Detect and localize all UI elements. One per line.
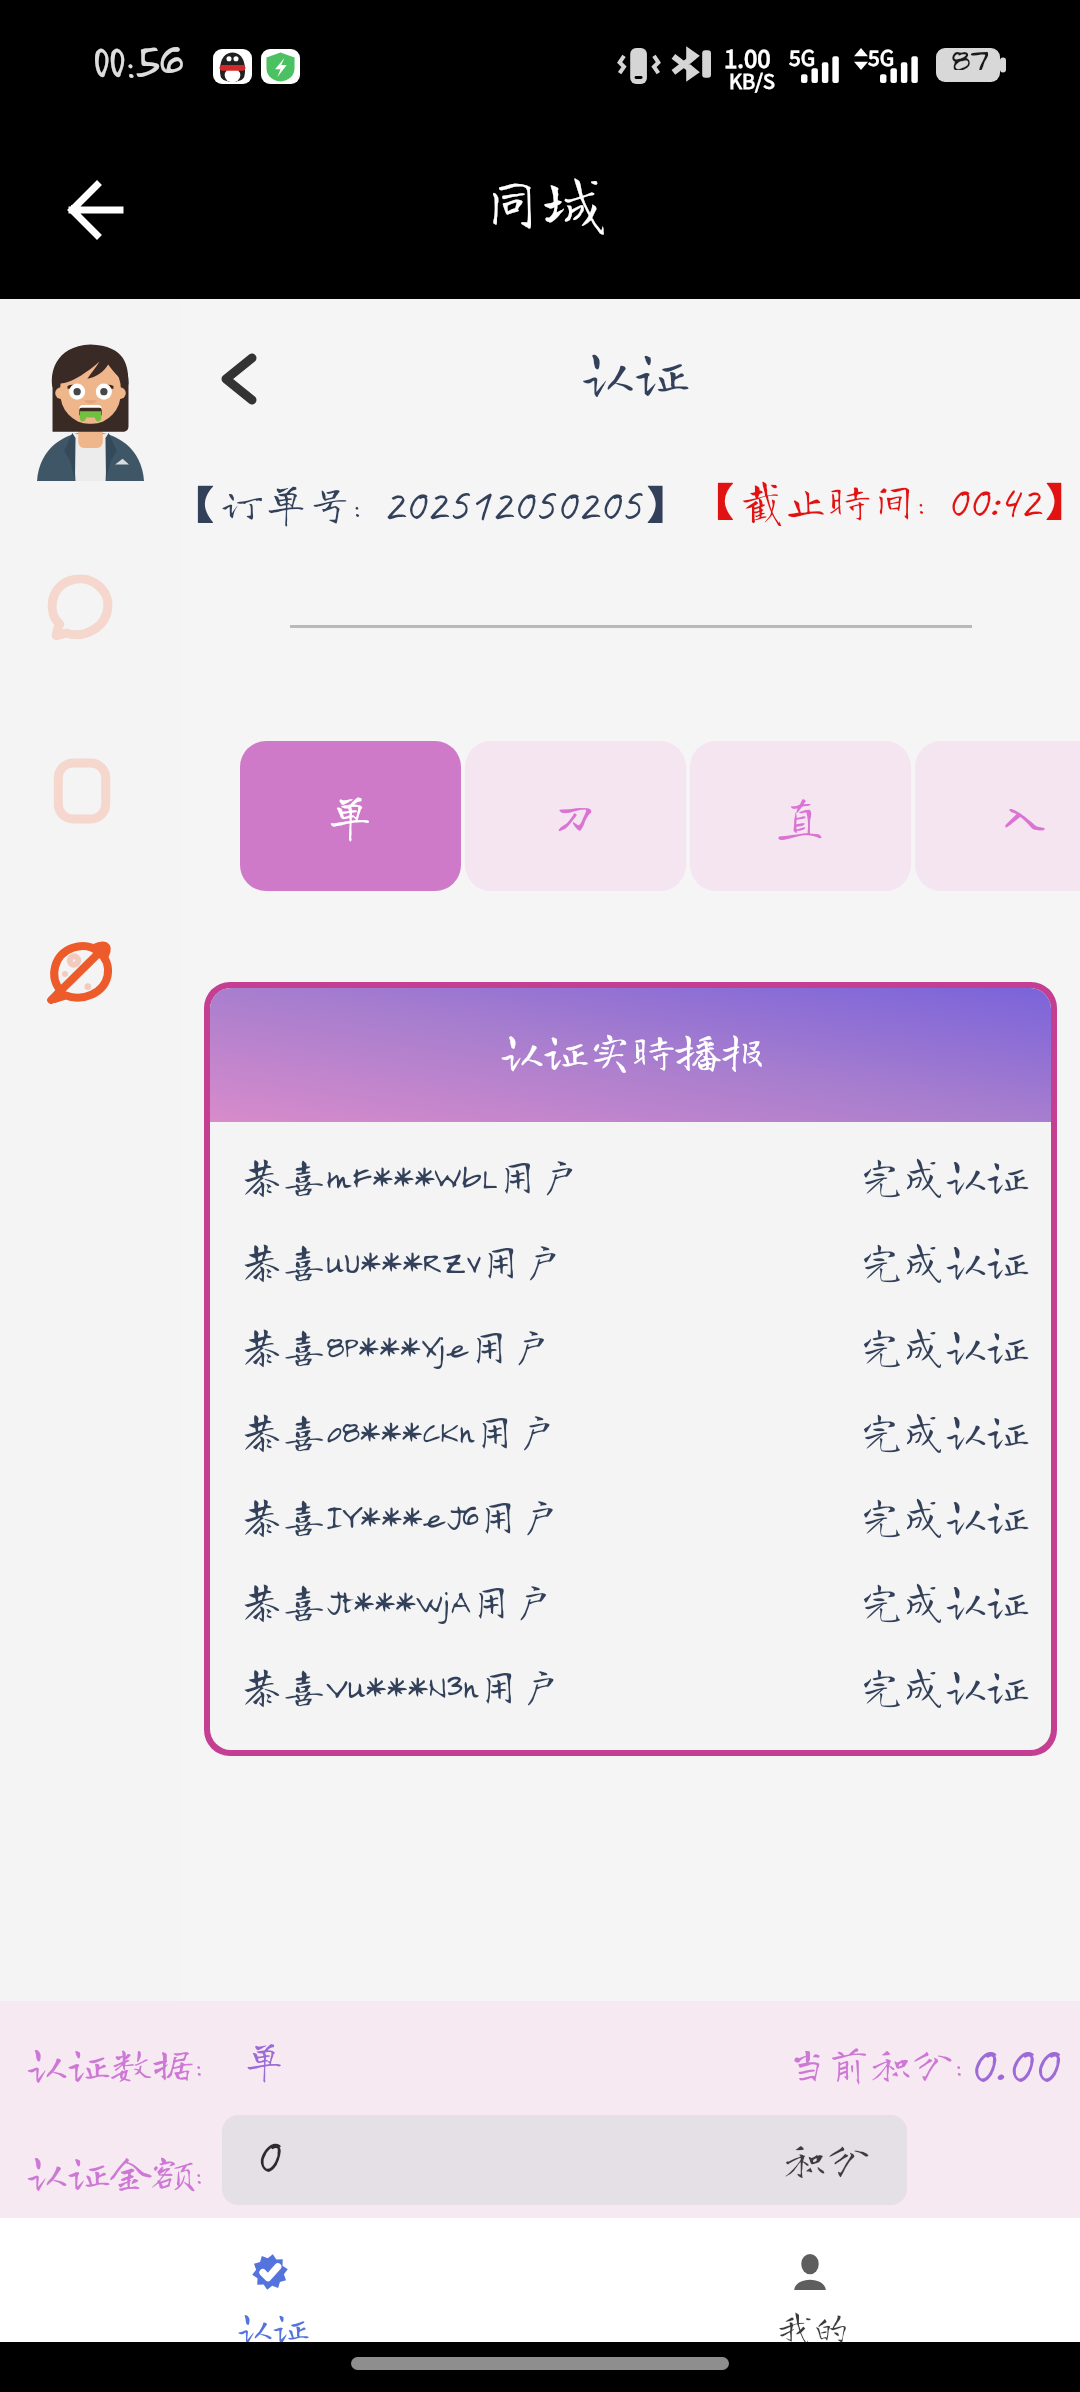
staticText: 恭喜mF***WbL用户 (241, 1154, 581, 1196)
staticText: 恭喜Vu***N3n用户 (241, 1664, 562, 1706)
staticText: 刀 (551, 792, 600, 840)
button[interactable]: Messages (46, 576, 109, 638)
staticText: 完成认证 (861, 1579, 1030, 1621)
staticText: 1.00 (724, 40, 771, 75)
staticText: 恭喜8P***Xje用户 (241, 1324, 553, 1366)
staticText: 【订单号: 202512050205】 (176, 474, 685, 534)
staticText: 恭喜Jt***wjA用户 (241, 1579, 555, 1621)
button[interactable]: 入 (915, 741, 1080, 891)
button[interactable]: Back (196, 336, 282, 422)
staticText: 同城 (481, 170, 606, 232)
staticText: 0.00 (967, 2027, 1057, 2100)
staticText: 5G (868, 42, 895, 72)
staticText: 恭喜o8***CKn用户 (241, 1409, 558, 1451)
staticText: 认证 (237, 2308, 310, 2344)
staticText: 我的 (777, 2308, 850, 2344)
staticText: 5G (789, 42, 816, 72)
staticText: 完成认证 (861, 1324, 1030, 1366)
staticText: 入 (1001, 792, 1050, 840)
staticText: 单 (326, 792, 375, 840)
button[interactable]: Back (54, 168, 138, 252)
button[interactable]: 0 (222, 2115, 907, 2205)
staticText: 【截止时间: 00:42】 (696, 472, 1080, 531)
staticText: 完成认证 (861, 1154, 1030, 1196)
staticText: 完成认证 (861, 1239, 1030, 1281)
staticText: 完成认证 (861, 1664, 1030, 1706)
staticText: 认证金额: (26, 2150, 202, 2192)
staticText: 完成认证 (861, 1409, 1030, 1451)
button[interactable]: Discover (50, 942, 110, 1000)
staticText: 当前积分: (786, 2042, 962, 2084)
staticText: 87 (950, 36, 988, 70)
staticText: KB/S (729, 66, 775, 95)
staticText: 完成认证 (861, 1494, 1030, 1536)
button[interactable]: 认证 (0, 2218, 540, 2342)
button[interactable]: 我的 (540, 2218, 1080, 2342)
staticText: 认证实时播报 (500, 1028, 764, 1072)
staticText: 0 (253, 2120, 278, 2189)
staticText: 恭喜IY***eJ6用户 (241, 1494, 561, 1536)
button[interactable]: 直 (690, 741, 911, 891)
staticText: 单 (243, 2039, 286, 2081)
staticText: 认证 (581, 344, 689, 398)
button[interactable]: 单 (240, 741, 461, 891)
staticText: 认证数据: (26, 2042, 202, 2084)
staticText: 积分 (783, 2136, 871, 2180)
staticText: 00:56 (92, 29, 181, 89)
button[interactable]: Notes (55, 763, 109, 819)
staticText: 直 (776, 792, 825, 840)
button[interactable]: 刀 (465, 741, 686, 891)
staticText: 恭喜uU***RZv用户 (241, 1239, 564, 1281)
